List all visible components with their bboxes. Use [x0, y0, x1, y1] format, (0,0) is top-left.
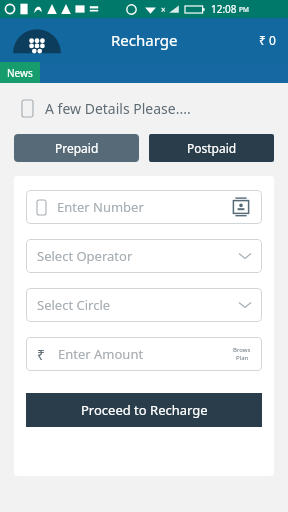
staticText: Enter Amount — [58, 345, 144, 363]
button[interactable]: App logo — [14, 18, 60, 62]
button[interactable]: Pick contact — [231, 197, 251, 217]
staticText: ₹ 0 — [259, 32, 276, 48]
button[interactable]: ₹ — [37, 337, 251, 371]
button[interactable]: ₹ 0 — [259, 32, 276, 48]
staticText: Select Operator — [37, 247, 133, 265]
button[interactable]: Prepaid — [14, 134, 139, 162]
staticText: Postpaid — [187, 140, 237, 156]
button[interactable]: Enter Number — [37, 190, 251, 224]
button[interactable]: Select Operator — [37, 239, 251, 273]
button[interactable]: Brows — [233, 346, 251, 362]
staticText: News — [7, 66, 33, 80]
staticText: × — [161, 4, 166, 15]
staticText: A few Details Please.... — [45, 99, 191, 118]
staticText: ₹ — [37, 345, 46, 364]
staticText: Enter Number — [57, 198, 144, 216]
staticText: Proceed to Recharge — [81, 401, 208, 419]
staticText: Brows — [233, 346, 251, 354]
button[interactable]: News — [0, 62, 40, 83]
button[interactable]: Postpaid — [149, 134, 274, 162]
staticText: Prepaid — [55, 140, 99, 156]
button[interactable]: Proceed to Recharge — [26, 393, 262, 427]
staticText: 12:08 — [211, 2, 237, 16]
staticText: Recharge — [111, 30, 178, 50]
staticText: Select Circle — [37, 296, 111, 314]
button[interactable]: Select Circle — [37, 288, 251, 322]
staticText: PM — [239, 5, 249, 14]
staticText: Plan — [236, 354, 249, 362]
